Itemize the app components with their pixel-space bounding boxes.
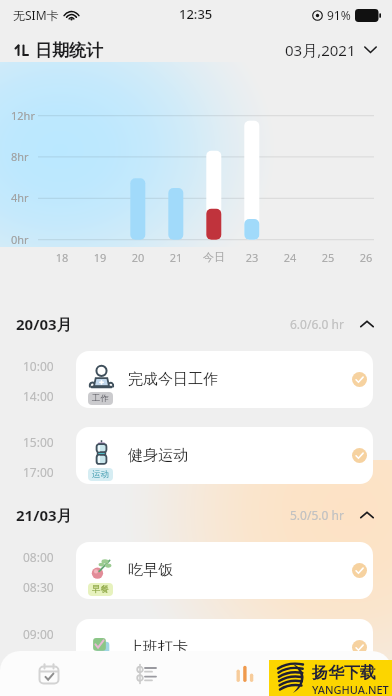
staticText: 10:00 [23,358,54,374]
staticText: 23 [233,250,271,265]
staticText: 12hr [11,108,35,123]
staticText: 12:35 [179,5,213,23]
staticText: YANGHUA.NET [312,682,389,696]
staticText: 工作 [92,393,109,404]
button[interactable]: 早餐 [76,542,373,599]
staticText: 26 [347,250,385,265]
button[interactable]: Tasks [98,651,196,696]
button[interactable]: 03月,2021 [283,34,379,66]
staticText: 25 [309,250,347,265]
button[interactable]: Collapse section [356,313,378,335]
staticText: 03月,2021 [285,40,356,60]
staticText: 09:30 [23,656,54,672]
staticText: 09:00 [23,626,54,642]
staticText: 8hr [11,149,29,164]
staticText: 运动 [92,469,109,480]
staticText: 91% [327,7,351,23]
button[interactable]: Profile [294,651,392,696]
staticText: 吃早饭 [128,561,173,580]
staticText: 5.0/5.0 hr [290,507,344,523]
button[interactable]: 工作 [76,351,373,408]
button[interactable]: 运动 [76,427,373,484]
staticText: 早餐 [92,584,109,595]
staticText: 日期统计 [35,40,103,61]
staticText: 扬华下载 [312,663,376,683]
staticText: 4hr [11,190,29,205]
staticText: 08:00 [23,549,54,565]
button[interactable]: 打卡 [76,619,373,676]
staticText: 14:00 [23,388,54,404]
staticText: 上班打卡 [128,638,188,657]
staticText: 20 [119,250,157,265]
staticText: 15:00 [23,434,54,450]
staticText: 21 [157,250,195,265]
staticText: 19 [81,250,119,265]
staticText: 08:30 [23,579,54,595]
staticText: 无SIM卡 [13,7,59,23]
staticText: 18 [43,250,81,265]
button[interactable]: Statistics [196,651,294,696]
staticText: 6.0/6.0 hr [290,316,344,332]
staticText: 24 [271,250,309,265]
staticText: 健身运动 [128,446,188,465]
staticText: 20/03月 [16,314,72,334]
staticText: 21/03月 [16,505,72,525]
staticText: 今日 [195,250,233,264]
staticText: 17:00 [23,464,54,480]
button[interactable]: Calendar [0,651,98,696]
button[interactable]: Collapse section [356,504,378,526]
staticText: 完成今日工作 [128,370,218,389]
staticText: 0hr [11,232,29,247]
